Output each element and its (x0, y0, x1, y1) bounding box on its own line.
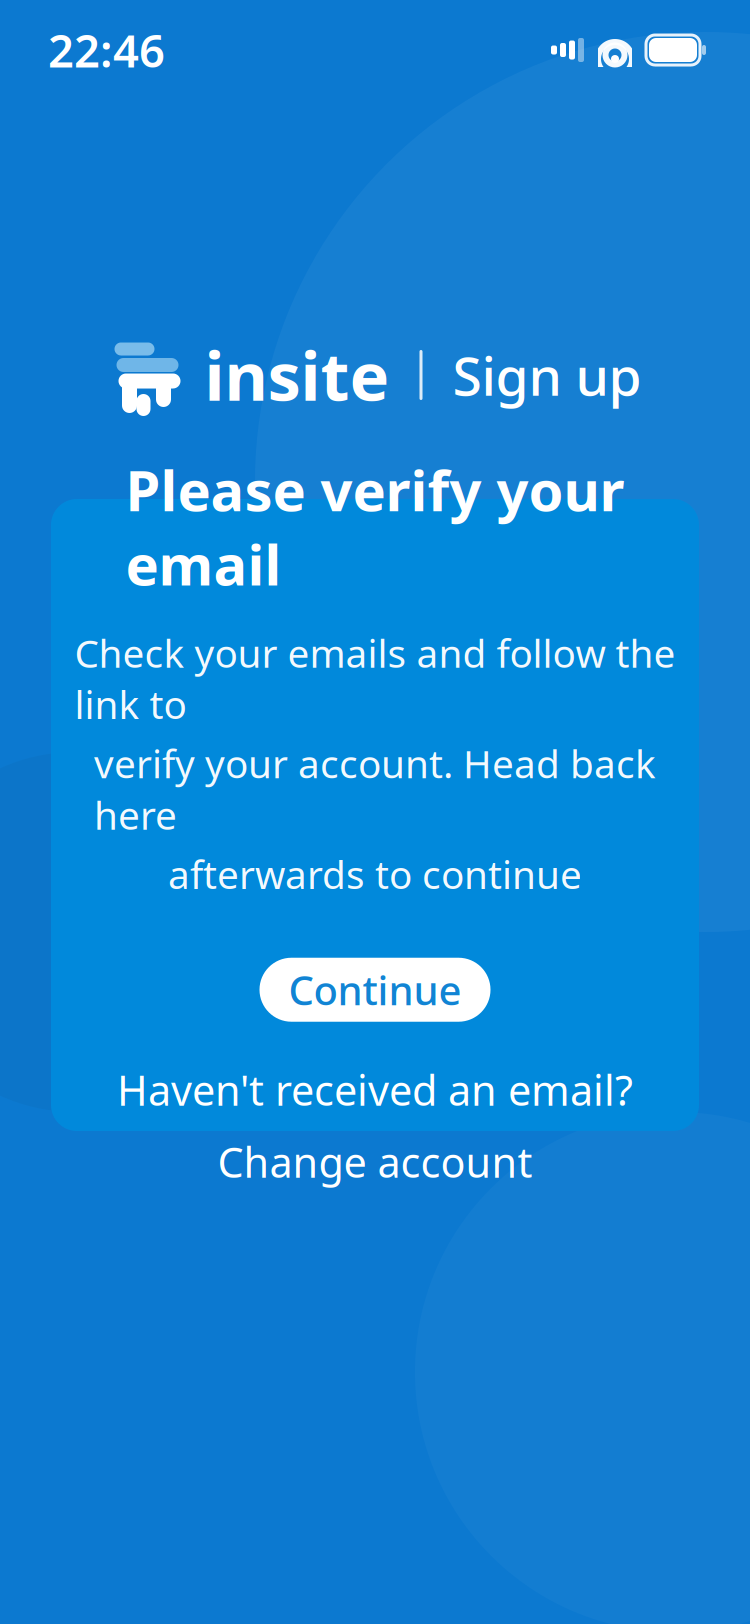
staticText: Check your emails and follow the link to (74, 627, 675, 730)
staticText: Sign up (452, 340, 641, 410)
button[interactable]: Continue (259, 958, 490, 1022)
staticText: 22:46 (48, 20, 165, 80)
staticText: Change account (217, 1134, 532, 1189)
button[interactable]: Haven't received an email? (95, 1066, 655, 1114)
staticText: afterwards to continue (168, 848, 582, 900)
staticText: Continue (288, 963, 461, 1016)
staticText: insite (204, 331, 389, 419)
staticText: Haven't received an email? (117, 1062, 633, 1117)
button[interactable]: Change account (95, 1138, 655, 1186)
staticText: verify your account. Head back here (94, 738, 656, 840)
staticText: Please verify your email (125, 452, 624, 601)
